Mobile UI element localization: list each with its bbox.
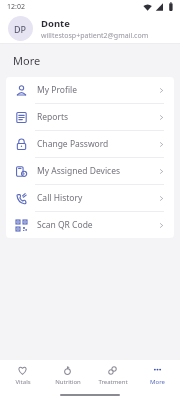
staticText: Change Password [37,138,109,150]
staticText: DP [14,23,27,35]
button[interactable]: Reports [6,104,174,130]
button[interactable]: Treatment [90,360,135,390]
staticText: My Profile [37,84,77,96]
staticText: 12:02 [7,2,25,12]
staticText: My Assigned Devices [37,165,121,177]
button[interactable]: Scan QR Code [6,212,174,238]
staticText: willtestosp+patient2@gmail.com [41,31,149,41]
staticText: More [13,53,41,68]
staticText: Treatment [98,378,128,386]
button[interactable]: Change Password [6,131,174,157]
staticText: More [150,378,165,386]
staticText: Vitals [15,378,31,386]
button[interactable]: Call History [6,185,174,211]
button[interactable]: My Profile [6,77,174,103]
staticText: Nutrition [55,378,81,386]
button[interactable]: My Assigned Devices [6,158,174,184]
staticText: Scan QR Code [37,219,93,231]
button[interactable]: More [135,360,180,390]
button[interactable]: Vitals [0,360,45,390]
button[interactable]: Nutrition [45,360,90,390]
staticText: Donte [41,17,70,30]
staticText: Call History [37,192,83,204]
staticText: Reports [37,111,69,123]
